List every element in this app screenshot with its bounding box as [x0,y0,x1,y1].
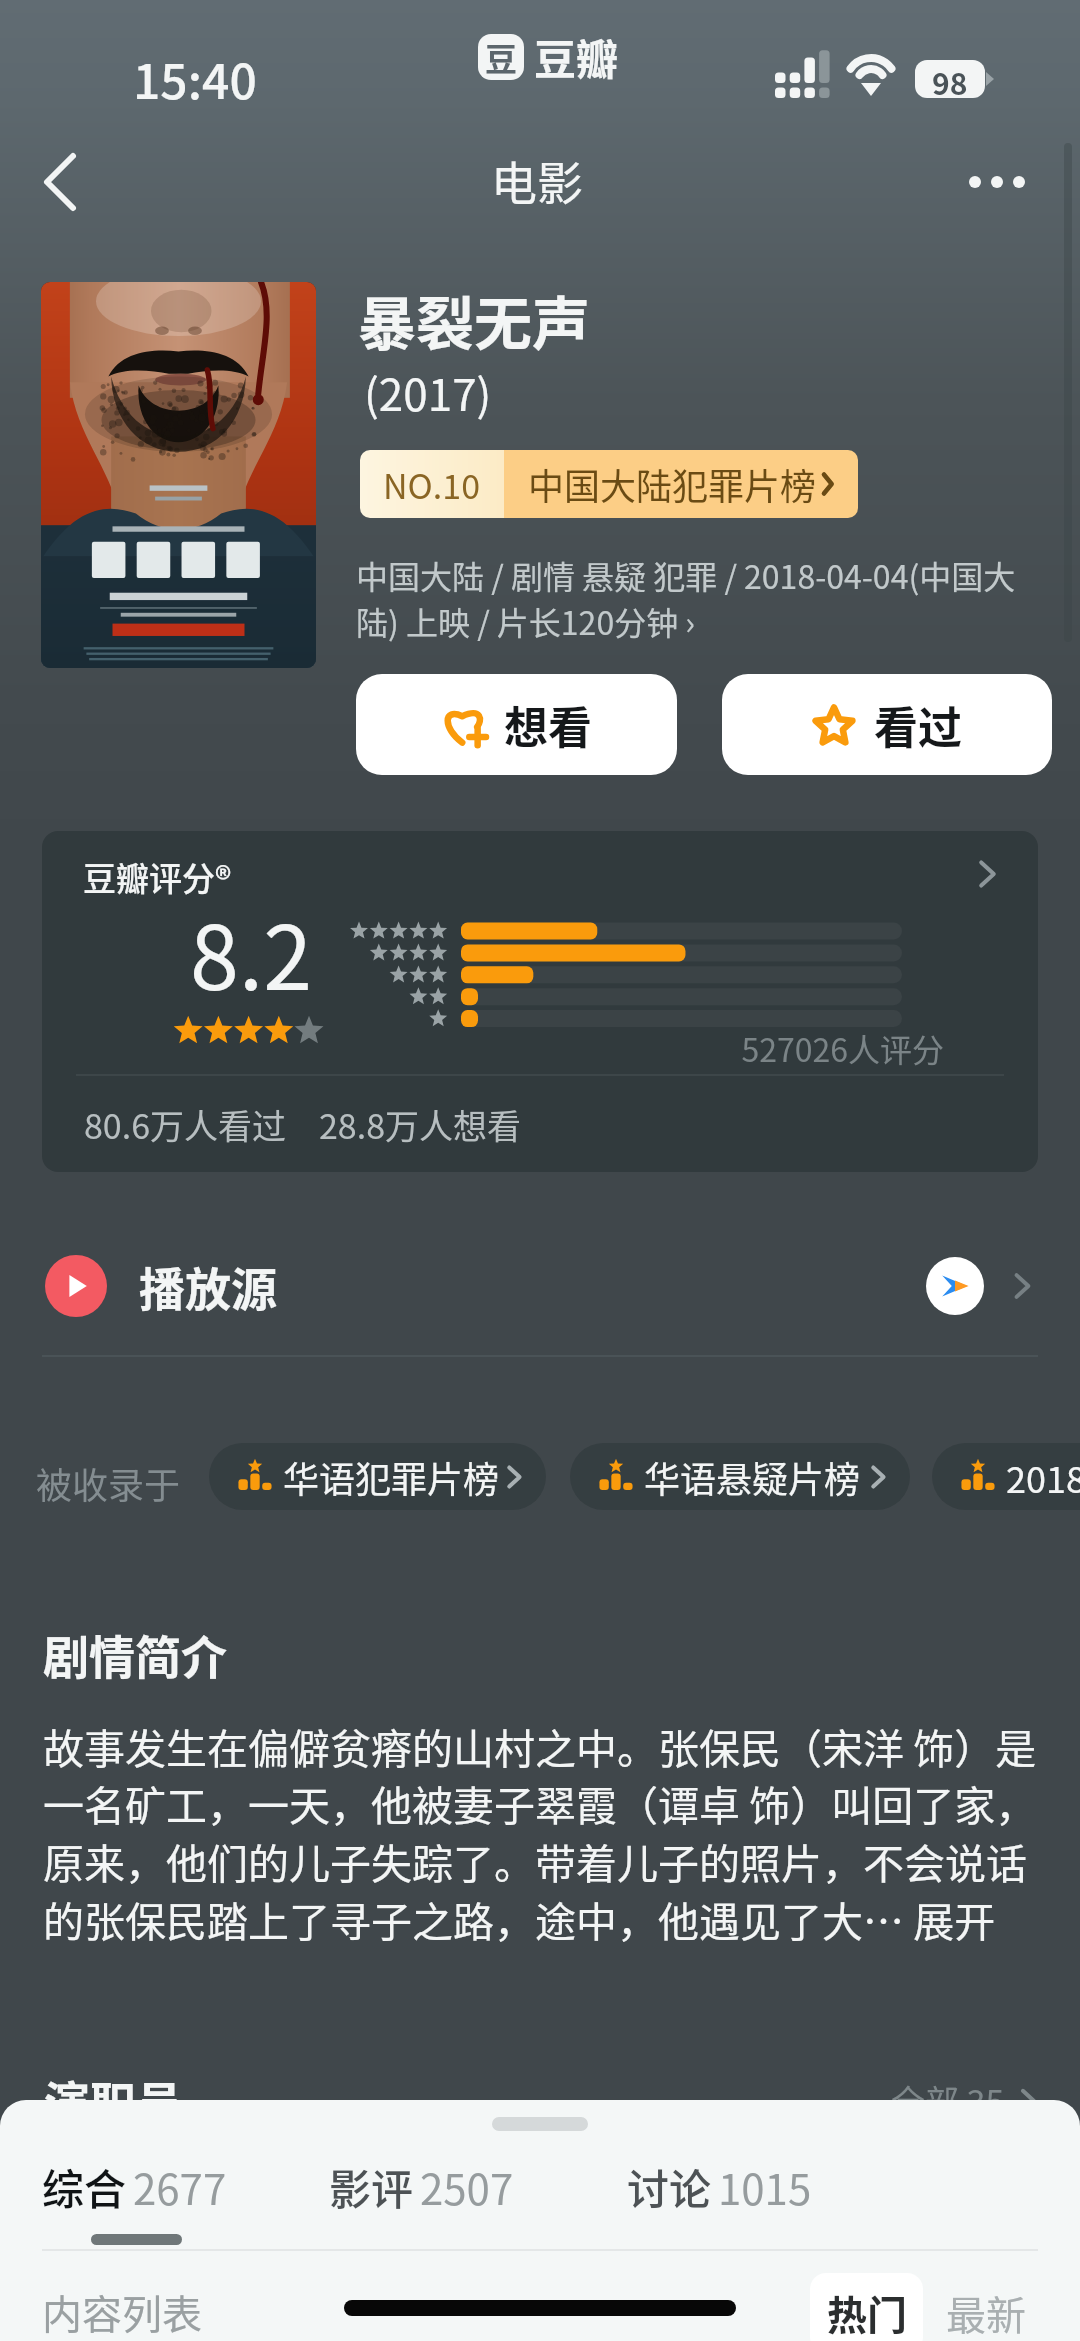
staticText: 98 [932,60,968,98]
staticText: 2507 [420,2156,514,2217]
button[interactable]: 播放源 [45,1236,1038,1336]
staticText: 华语悬疑片榜 [644,1451,861,1503]
staticText: 热门 [827,2284,907,2341]
staticText: 15:40 [133,43,257,113]
button[interactable]: More options [948,138,1046,226]
staticText: 豆瓣评分® [83,853,232,901]
staticText: 全部 35 [891,2076,1005,2125]
staticText: 80.6万人看过 [84,1100,287,1149]
button[interactable]: 看过 [722,674,1052,775]
staticText: 看过 [874,693,962,757]
button[interactable]: 最新 [931,2273,1041,2341]
staticText: NO.10 [383,460,481,509]
staticText: 想看 [504,693,592,757]
staticText: 故事发生在偏僻贫瘠的山村之中。张保民（宋洋 饰）是 一名矿工，一天，他被妻子翠霞… [43,1716,1037,1949]
button[interactable]: 影评 [329,2156,514,2217]
staticText: 讨论 [627,2156,712,2217]
staticText: 最新 [946,2284,1026,2341]
staticText: 播放源 [139,1253,277,1320]
staticText: 剧情简介 [43,1621,227,1688]
button[interactable]: Movie poster [41,282,316,668]
staticText: 内容列表 [42,2283,202,2341]
staticText: 2677 [133,2156,227,2217]
staticText: 中国大陆犯罪片榜 [528,458,817,510]
staticText: (2017) [364,360,492,424]
button[interactable]: 华语悬疑片榜 [570,1443,910,1510]
button[interactable]: Back [16,138,104,226]
button[interactable]: NO.10 [360,450,858,518]
button[interactable]: 讨论 [627,2156,812,2217]
button[interactable]: 想看 [356,674,677,775]
button[interactable]: 2018年度榜 [932,1443,1080,1510]
staticText: 暴裂无声 [358,278,591,362]
staticText: 被收录于 [36,1457,181,1509]
button[interactable]: 华语犯罪片榜 [209,1443,546,1510]
staticText: 华语犯罪片榜 [283,1451,500,1503]
staticText: 演职员 [44,2067,182,2134]
button[interactable]: 综合 [42,2156,227,2217]
staticText: 28.8万人想看 [319,1100,522,1149]
button[interactable]: 热门 [810,2273,923,2341]
staticText: 8.2 [190,888,313,1015]
staticText: 豆 [485,34,518,80]
staticText: 1015 [718,2156,812,2217]
staticText: 2018年度榜 [1006,1451,1080,1503]
staticText: 影评 [329,2156,414,2217]
staticText: 527026人评分 [682,1025,944,1071]
staticText: 电影 [491,147,583,214]
button[interactable]: 豆瓣评分® [42,831,1038,1074]
staticText: 豆瓣 [534,26,619,87]
staticText: 综合 [42,2156,127,2217]
staticText: 中国大陆 / 剧情 悬疑 犯罪 / 2018-04-04(中国大 陆) 上映 /… [356,552,1016,644]
